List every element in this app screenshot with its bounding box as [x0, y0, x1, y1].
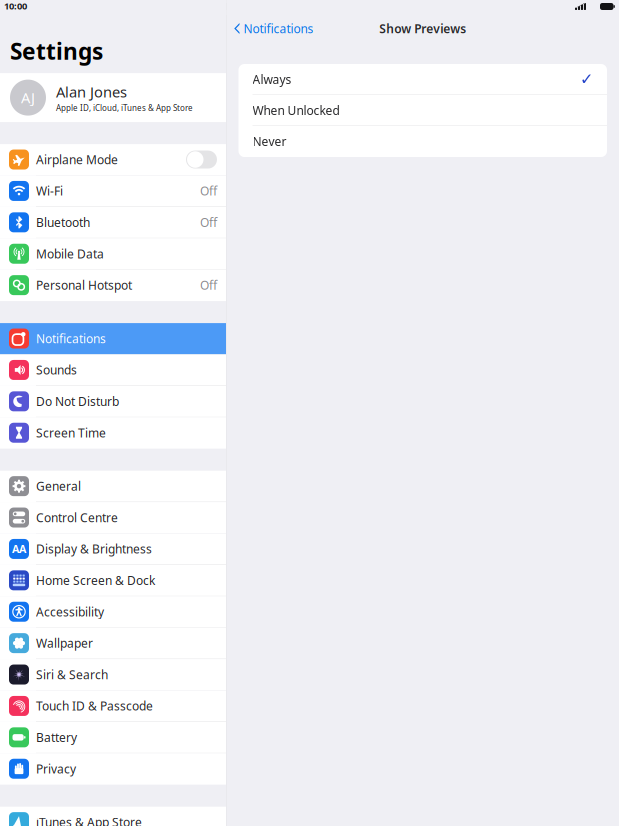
staticText: Control Centre — [36, 510, 118, 525]
button[interactable]: When Unlocked — [238, 95, 607, 126]
button[interactable]: AA — [0, 533, 226, 565]
staticText: Touch ID & Passcode — [36, 698, 153, 714]
button[interactable]: Screen Time — [0, 417, 226, 449]
staticText: AA — [12, 542, 26, 556]
staticText: Personal Hotspot — [36, 277, 132, 293]
button[interactable]: Notifications — [226, 16, 319, 40]
staticText: Battery — [36, 729, 77, 745]
staticText: Screen Time — [36, 425, 106, 441]
staticText: 10:00 — [4, 0, 27, 12]
staticText: Off — [200, 214, 217, 230]
button[interactable]: Mobile Data — [0, 238, 226, 270]
button[interactable]: Personal Hotspot — [0, 270, 226, 301]
staticText: Settings — [10, 36, 103, 66]
staticText: ✓ — [580, 70, 593, 88]
button[interactable]: Home Screen & Dock — [0, 565, 226, 596]
staticText: Accessibility — [36, 604, 104, 620]
staticText: Display & Brightness — [36, 541, 152, 557]
staticText: Apple ID, iCloud, iTunes & App Store — [56, 102, 193, 113]
button[interactable]: Accessibility — [0, 596, 226, 628]
button[interactable]: Always — [238, 64, 607, 95]
staticText: Airplane Mode — [36, 152, 118, 167]
staticText: Wallpaper — [36, 635, 93, 651]
staticText: Show Previews — [379, 20, 466, 36]
button[interactable]: iTunes & App Store — [0, 807, 226, 826]
button[interactable]: Sounds — [0, 354, 226, 386]
staticText: Notifications — [36, 331, 106, 346]
staticText: Notifications — [243, 20, 313, 36]
button[interactable]: Privacy — [0, 753, 226, 785]
button[interactable]: Notifications — [0, 323, 226, 354]
staticText: Off — [200, 277, 217, 293]
button[interactable]: Airplane Mode — [0, 144, 226, 175]
staticText: Always — [252, 71, 291, 87]
button[interactable]: Control Centre — [0, 502, 226, 533]
staticText: Do Not Disturb — [36, 393, 119, 409]
staticText: iTunes & App Store — [36, 814, 142, 826]
button[interactable]: Wi-Fi — [0, 175, 226, 207]
staticText: Off — [200, 183, 217, 199]
staticText: Siri & Search — [36, 667, 108, 682]
button[interactable]: Touch ID & Passcode — [0, 690, 226, 722]
button[interactable]: Battery — [0, 722, 226, 753]
staticText: Bluetooth — [36, 214, 90, 230]
staticText: Wi-Fi — [36, 183, 63, 199]
staticText: Alan Jones — [56, 82, 127, 102]
button[interactable]: Bluetooth — [0, 207, 226, 238]
button[interactable]: General — [0, 471, 226, 502]
button[interactable]: Siri & Search — [0, 659, 226, 690]
button[interactable]: Do Not Disturb — [0, 386, 226, 417]
staticText: Never — [252, 133, 286, 149]
staticText: When Unlocked — [252, 102, 339, 118]
staticText: Sounds — [36, 362, 77, 378]
button[interactable]: Wallpaper — [0, 628, 226, 659]
button[interactable]: AJ — [0, 73, 226, 122]
staticText: General — [36, 478, 81, 494]
button[interactable]: Never — [238, 126, 607, 157]
staticText: Privacy — [36, 761, 76, 777]
staticText: Mobile Data — [36, 246, 104, 262]
staticText: AJ — [21, 88, 35, 107]
staticText: Home Screen & Dock — [36, 572, 155, 588]
